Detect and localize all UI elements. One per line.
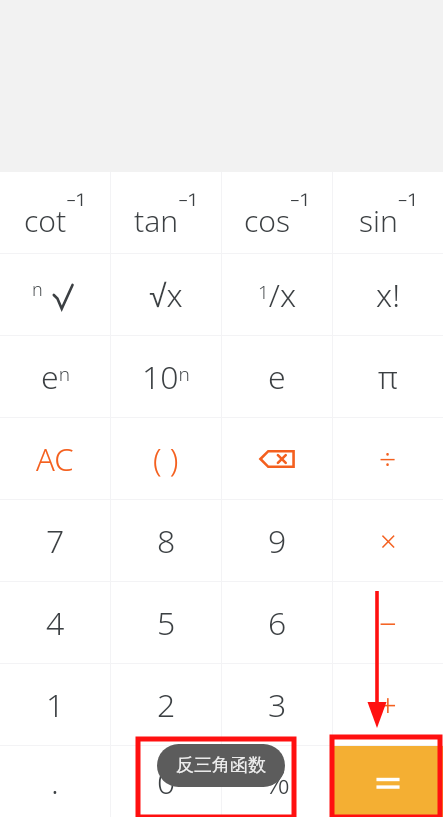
- staticText: cos⁻¹: [244, 186, 310, 240]
- staticText: 10n: [142, 355, 190, 399]
- staticText: AC: [36, 438, 74, 480]
- button[interactable]: 0: [111, 746, 221, 817]
- staticText: 反三角函数: [176, 754, 266, 777]
- staticText: 8: [157, 519, 176, 563]
- button[interactable]: x!: [333, 254, 443, 335]
- staticText: cot⁻¹: [24, 186, 87, 240]
- button[interactable]: Equals: [333, 746, 443, 817]
- staticText: 3: [268, 683, 287, 727]
- staticText: −: [379, 602, 397, 644]
- staticText: 1: [46, 683, 65, 727]
- staticText: +: [379, 684, 397, 726]
- staticText: ÷: [379, 438, 397, 479]
- button[interactable]: 6: [222, 582, 332, 663]
- staticText: 5: [157, 601, 176, 645]
- staticText: π: [378, 355, 398, 399]
- staticText: ( ): [153, 438, 179, 480]
- button[interactable]: 3: [222, 664, 332, 745]
- staticText: 7: [46, 519, 65, 563]
- button[interactable]: nth root: [0, 254, 110, 335]
- button[interactable]: 1/x: [222, 254, 332, 335]
- staticText: 2: [157, 683, 176, 727]
- button[interactable]: en: [0, 336, 110, 417]
- button[interactable]: %: [222, 746, 332, 817]
- staticText: e: [268, 355, 286, 399]
- button[interactable]: 10n: [111, 336, 221, 417]
- button[interactable]: sin⁻¹: [333, 172, 443, 253]
- staticText: ×: [380, 521, 397, 560]
- button[interactable]: e: [222, 336, 332, 417]
- staticText: 4: [46, 601, 65, 645]
- staticText: 0: [157, 760, 176, 804]
- button[interactable]: π: [333, 336, 443, 417]
- staticText: 1/x: [258, 273, 297, 317]
- button[interactable]: +: [333, 664, 443, 745]
- button[interactable]: ÷: [333, 418, 443, 499]
- staticText: tan⁻¹: [134, 186, 198, 240]
- button[interactable]: ( ): [111, 418, 221, 499]
- button[interactable]: ×: [333, 500, 443, 581]
- button[interactable]: 9: [222, 500, 332, 581]
- button[interactable]: cos⁻¹: [222, 172, 332, 253]
- button[interactable]: −: [333, 582, 443, 663]
- button[interactable]: tan⁻¹: [111, 172, 221, 253]
- button[interactable]: .: [0, 746, 110, 817]
- staticText: n: [32, 277, 43, 302]
- button[interactable]: 7: [0, 500, 110, 581]
- staticText: √x: [149, 273, 183, 317]
- button[interactable]: Backspace: [222, 418, 332, 499]
- staticText: 9: [268, 519, 287, 563]
- staticText: x!: [376, 273, 401, 317]
- staticText: 6: [268, 601, 287, 645]
- staticText: en: [41, 355, 70, 399]
- button[interactable]: 8: [111, 500, 221, 581]
- button[interactable]: √x: [111, 254, 221, 335]
- button[interactable]: AC: [0, 418, 110, 499]
- button[interactable]: 4: [0, 582, 110, 663]
- staticText: sin⁻¹: [359, 186, 418, 240]
- button[interactable]: 2: [111, 664, 221, 745]
- staticText: .: [51, 760, 59, 804]
- button[interactable]: 1: [0, 664, 110, 745]
- staticText: %: [264, 760, 290, 804]
- button[interactable]: cot⁻¹: [0, 172, 110, 253]
- button[interactable]: 5: [111, 582, 221, 663]
